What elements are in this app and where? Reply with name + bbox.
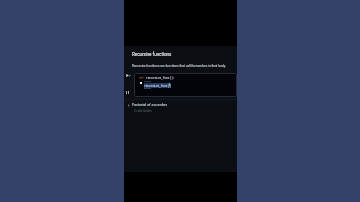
button[interactable]: def bbox=[134, 73, 237, 97]
staticText: 2 cells hidden bbox=[134, 109, 152, 112]
staticText: recursive_func() bbox=[144, 84, 171, 88]
button[interactable]: Factorial of a number bbox=[127, 103, 240, 107]
staticText: def bbox=[139, 76, 146, 80]
button[interactable]: Run cell bbox=[124, 72, 131, 79]
staticText: Recursive functions are functions that c… bbox=[132, 64, 226, 68]
staticText: Factorial of a number bbox=[132, 103, 167, 107]
button[interactable]: Interrupt execution bbox=[126, 91, 129, 94]
button[interactable]: Cell options bbox=[128, 74, 131, 77]
staticText: recursive_func(): bbox=[146, 76, 175, 80]
staticText: Recursive functions bbox=[132, 52, 172, 57]
